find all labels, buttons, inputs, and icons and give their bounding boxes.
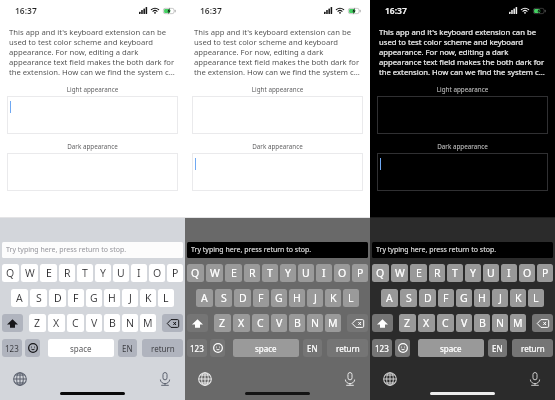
button[interactable]: D xyxy=(49,289,66,307)
button[interactable]: O xyxy=(519,264,535,282)
button[interactable]: V xyxy=(271,314,287,332)
button[interactable]: EN xyxy=(118,339,137,357)
button[interactable]: Light appearance text field xyxy=(192,96,363,134)
button[interactable]: O xyxy=(149,264,165,282)
button[interactable]: M xyxy=(510,314,526,332)
button[interactable]: W xyxy=(206,264,223,282)
button[interactable]: D xyxy=(234,289,251,307)
button[interactable]: K xyxy=(510,289,526,307)
button[interactable]: U xyxy=(298,264,314,282)
button[interactable]: Y xyxy=(280,264,296,282)
button[interactable]: C xyxy=(67,314,84,332)
button[interactable]: Dictation xyxy=(343,372,357,386)
button[interactable]: Dictation xyxy=(158,372,172,386)
button[interactable]: J xyxy=(122,289,138,307)
button[interactable]: V xyxy=(86,314,102,332)
button[interactable]: U xyxy=(483,264,499,282)
button[interactable]: F xyxy=(68,289,84,307)
button[interactable]: Y xyxy=(95,264,111,282)
button[interactable]: B xyxy=(104,314,120,332)
button[interactable]: U xyxy=(113,264,129,282)
button[interactable]: Q xyxy=(372,264,389,282)
button[interactable]: H xyxy=(474,289,490,307)
button[interactable]: space xyxy=(233,339,299,357)
button[interactable]: V xyxy=(456,314,472,332)
button[interactable]: T xyxy=(77,264,93,282)
button[interactable]: B xyxy=(474,314,490,332)
button[interactable]: M xyxy=(325,314,341,332)
button[interactable]: H xyxy=(104,289,120,307)
button[interactable]: A xyxy=(381,289,398,307)
button[interactable]: N xyxy=(307,314,323,332)
button[interactable]: X xyxy=(48,314,65,332)
button[interactable]: Shift xyxy=(2,314,23,332)
button[interactable]: E xyxy=(225,264,242,282)
button[interactable]: F xyxy=(438,289,454,307)
button[interactable]: Light appearance text field xyxy=(7,96,178,134)
button[interactable]: Emoji xyxy=(210,339,225,357)
button[interactable]: G xyxy=(86,289,102,307)
button[interactable]: Backspace xyxy=(162,314,183,332)
button[interactable]: J xyxy=(307,289,323,307)
button[interactable]: Dark appearance text field xyxy=(377,153,548,191)
button[interactable]: Try typing here, press return to stop. xyxy=(2,242,183,258)
button[interactable]: return xyxy=(512,339,553,357)
button[interactable]: B xyxy=(289,314,305,332)
button[interactable]: return xyxy=(142,339,183,357)
button[interactable]: Switch keyboard xyxy=(383,372,397,386)
button[interactable]: return xyxy=(327,339,368,357)
button[interactable]: Emoji xyxy=(25,339,40,357)
button[interactable]: M xyxy=(140,314,156,332)
button[interactable]: X xyxy=(233,314,250,332)
button[interactable]: S xyxy=(400,289,417,307)
button[interactable]: T xyxy=(447,264,463,282)
button[interactable]: S xyxy=(30,289,47,307)
button[interactable]: L xyxy=(343,289,359,307)
button[interactable]: W xyxy=(391,264,408,282)
button[interactable]: Y xyxy=(465,264,481,282)
button[interactable]: S xyxy=(215,289,232,307)
button[interactable]: J xyxy=(492,289,508,307)
button[interactable]: L xyxy=(158,289,174,307)
button[interactable]: 123 xyxy=(187,339,207,357)
button[interactable]: X xyxy=(418,314,435,332)
button[interactable]: P xyxy=(167,264,183,282)
button[interactable]: 123 xyxy=(372,339,392,357)
button[interactable]: Shift xyxy=(187,314,208,332)
button[interactable]: A xyxy=(11,289,28,307)
button[interactable]: Try typing here, press return to stop. xyxy=(372,242,553,258)
button[interactable]: Shift xyxy=(372,314,393,332)
button[interactable]: T xyxy=(262,264,278,282)
button[interactable]: Light appearance text field xyxy=(377,96,548,134)
button[interactable]: R xyxy=(429,264,445,282)
button[interactable]: Dark appearance text field xyxy=(192,153,363,191)
button[interactable]: I xyxy=(316,264,332,282)
button[interactable]: I xyxy=(501,264,517,282)
button[interactable]: Switch keyboard xyxy=(13,372,27,386)
button[interactable]: Dark appearance text field xyxy=(7,153,178,191)
button[interactable]: Emoji xyxy=(395,339,410,357)
button[interactable]: P xyxy=(352,264,368,282)
button[interactable]: EN xyxy=(488,339,507,357)
button[interactable]: K xyxy=(140,289,156,307)
button[interactable]: D xyxy=(419,289,436,307)
button[interactable]: I xyxy=(131,264,147,282)
button[interactable]: H xyxy=(289,289,305,307)
button[interactable]: EN xyxy=(303,339,322,357)
button[interactable]: Q xyxy=(2,264,19,282)
button[interactable]: C xyxy=(437,314,454,332)
button[interactable]: E xyxy=(40,264,57,282)
button[interactable]: 123 xyxy=(2,339,22,357)
button[interactable]: G xyxy=(456,289,472,307)
button[interactable]: N xyxy=(122,314,138,332)
button[interactable]: Backspace xyxy=(532,314,553,332)
button[interactable]: R xyxy=(244,264,260,282)
button[interactable]: E xyxy=(410,264,427,282)
button[interactable]: C xyxy=(252,314,269,332)
button[interactable]: space xyxy=(48,339,114,357)
button[interactable]: Z xyxy=(29,314,46,332)
button[interactable]: N xyxy=(492,314,508,332)
button[interactable]: space xyxy=(418,339,484,357)
button[interactable]: Backspace xyxy=(347,314,368,332)
button[interactable]: A xyxy=(196,289,213,307)
